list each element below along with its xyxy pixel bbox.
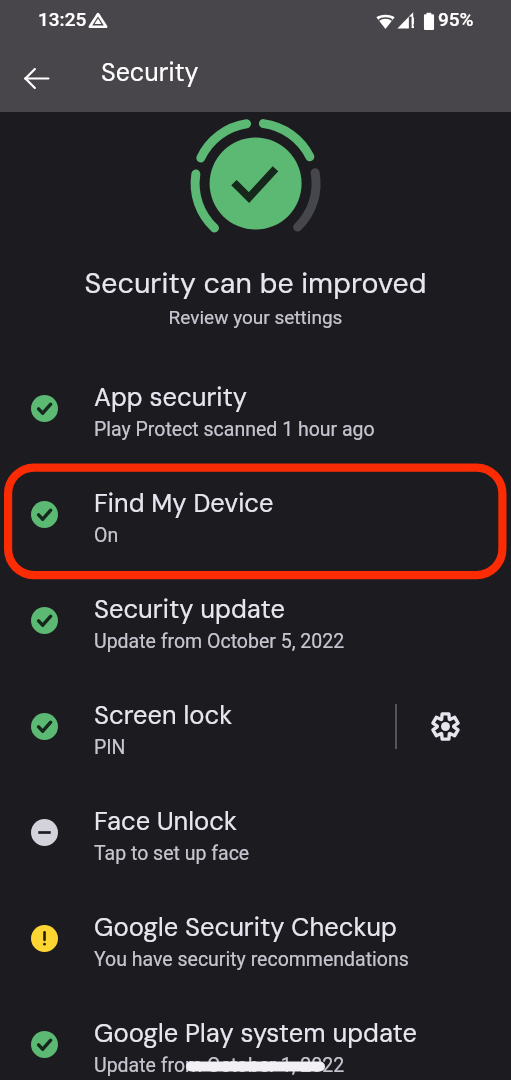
staticText: Find My Device <box>94 487 274 520</box>
button[interactable]: Back <box>12 54 60 102</box>
button[interactable]: Face Unlock <box>0 779 511 885</box>
staticText: Google Play system update <box>94 1017 418 1050</box>
button[interactable]: Security update <box>0 567 511 673</box>
staticText: App security <box>94 381 248 414</box>
staticText: On <box>94 524 119 547</box>
staticText: Update from October 5, 2022 <box>94 630 345 653</box>
staticText: Security can be improved <box>0 265 511 302</box>
staticText: 13:25 <box>38 8 87 30</box>
staticText: Security update <box>94 593 285 626</box>
staticText: 95% <box>438 8 474 30</box>
button[interactable]: Find My Device <box>0 461 511 567</box>
staticText: Google Security Checkup <box>94 911 397 944</box>
staticText: Face Unlock <box>94 805 237 838</box>
staticText: Review your settings <box>0 306 511 328</box>
button[interactable]: Google Play system update <box>0 991 511 1080</box>
staticText: Screen lock <box>94 699 233 732</box>
button[interactable]: Screen lock settings <box>397 677 511 775</box>
staticText: Tap to set up face <box>94 842 250 865</box>
staticText: PIN <box>94 736 126 759</box>
button[interactable]: Google Security Checkup <box>0 885 511 991</box>
staticText: You have security recommendations <box>94 948 409 971</box>
button[interactable]: App security <box>0 355 511 461</box>
staticText: Update from October 1, 2022 <box>94 1054 345 1077</box>
staticText: Play Protect scanned 1 hour ago <box>94 418 375 441</box>
button[interactable]: Screen lock <box>0 673 511 779</box>
staticText: Security <box>101 56 199 89</box>
